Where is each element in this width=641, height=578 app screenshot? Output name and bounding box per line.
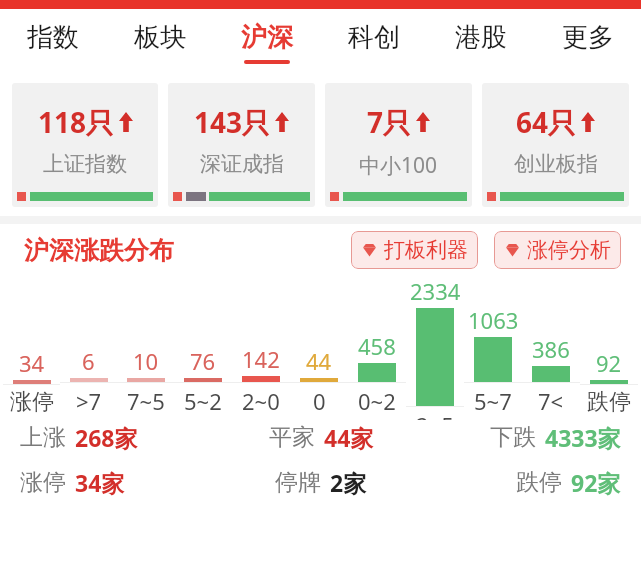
staticText: 5~7 bbox=[474, 386, 512, 416]
staticText: 港股 bbox=[455, 21, 507, 54]
button[interactable]: 沪深 bbox=[213, 9, 320, 75]
staticText: 沪深 bbox=[241, 21, 293, 54]
staticText: 涨停分析 bbox=[527, 237, 611, 263]
staticText: 92 bbox=[596, 348, 622, 378]
button[interactable]: 科创 bbox=[320, 9, 427, 75]
staticText: 64只 bbox=[516, 103, 577, 141]
other: VIP bbox=[361, 243, 378, 257]
staticText: 深证成指 bbox=[200, 151, 284, 177]
staticText: 268家 bbox=[75, 422, 138, 453]
staticText: 0~2 bbox=[358, 386, 396, 416]
button[interactable]: 92 bbox=[580, 276, 638, 420]
staticText: 2家 bbox=[330, 467, 367, 498]
staticText: 沪深涨跌分布 bbox=[24, 235, 174, 266]
staticText: 4333家 bbox=[545, 422, 621, 453]
button[interactable]: 458 bbox=[348, 276, 406, 420]
button[interactable]: 7只 bbox=[325, 83, 472, 207]
other: VIP bbox=[504, 243, 521, 257]
staticText: 44家 bbox=[324, 422, 374, 453]
staticText: 7只 bbox=[367, 103, 412, 141]
staticText: 44 bbox=[306, 346, 332, 376]
button[interactable]: 6 bbox=[60, 276, 117, 420]
button[interactable]: 上涨 bbox=[20, 422, 221, 453]
staticText: 458 bbox=[358, 331, 396, 361]
button[interactable]: 76 bbox=[174, 276, 232, 420]
staticText: 34 bbox=[19, 348, 45, 378]
button[interactable]: 64只 bbox=[482, 83, 629, 207]
staticText: 打板利器 bbox=[384, 237, 468, 263]
staticText: 6 bbox=[82, 346, 95, 376]
button[interactable]: 118只 bbox=[12, 83, 158, 207]
staticText: 科创 bbox=[348, 21, 400, 54]
staticText: 涨停 bbox=[20, 468, 66, 497]
button[interactable]: 停牌 bbox=[221, 467, 421, 498]
button[interactable]: 涨停 bbox=[20, 467, 221, 498]
button[interactable]: 44 bbox=[290, 276, 348, 420]
staticText: 下跌 bbox=[490, 423, 536, 452]
staticText: 跌停 bbox=[516, 468, 562, 497]
staticText: 143只 bbox=[194, 103, 271, 141]
staticText: >7 bbox=[76, 386, 102, 416]
button[interactable]: 34 bbox=[3, 276, 60, 420]
button[interactable]: 10 bbox=[117, 276, 174, 420]
staticText: 指数 bbox=[27, 21, 79, 54]
button[interactable]: 港股 bbox=[427, 9, 534, 75]
staticText: 10 bbox=[133, 346, 159, 376]
staticText: 0 bbox=[313, 386, 326, 416]
button[interactable]: 1063 bbox=[464, 276, 522, 420]
staticText: 76 bbox=[190, 346, 216, 376]
staticText: 上涨 bbox=[20, 423, 66, 452]
staticText: 中小100 bbox=[359, 151, 438, 180]
staticText: 386 bbox=[532, 334, 570, 364]
staticText: 2~5 bbox=[416, 410, 454, 420]
staticText: 涨停 bbox=[10, 388, 54, 416]
button[interactable]: 板块 bbox=[106, 9, 213, 75]
staticText: 2~0 bbox=[242, 386, 280, 416]
button[interactable]: 143只 bbox=[168, 83, 315, 207]
staticText: 1063 bbox=[468, 305, 519, 335]
button[interactable]: 指数 bbox=[0, 9, 106, 75]
staticText: 142 bbox=[242, 344, 280, 374]
staticText: 更多 bbox=[562, 21, 614, 54]
button[interactable]: 更多 bbox=[534, 9, 641, 75]
staticText: 118只 bbox=[38, 103, 115, 141]
button[interactable]: 2334 bbox=[406, 276, 464, 420]
staticText: 34家 bbox=[75, 467, 125, 498]
staticText: 7< bbox=[538, 386, 564, 416]
button[interactable]: 下跌 bbox=[421, 422, 621, 453]
staticText: 停牌 bbox=[275, 468, 321, 497]
button[interactable]: 386 bbox=[522, 276, 580, 420]
staticText: 平家 bbox=[269, 423, 315, 452]
button[interactable]: 平家 bbox=[221, 422, 421, 453]
staticText: 板块 bbox=[134, 21, 186, 54]
staticText: 跌停 bbox=[587, 388, 631, 416]
button[interactable]: VIP bbox=[351, 231, 478, 269]
button[interactable]: 跌停 bbox=[421, 467, 621, 498]
staticText: 上证指数 bbox=[43, 151, 127, 177]
staticText: 5~2 bbox=[184, 386, 222, 416]
button[interactable]: VIP bbox=[494, 231, 621, 269]
staticText: 7~5 bbox=[127, 386, 165, 416]
staticText: 创业板指 bbox=[514, 151, 598, 177]
staticText: 2334 bbox=[410, 276, 461, 306]
staticText: 92家 bbox=[571, 467, 621, 498]
button[interactable]: 142 bbox=[232, 276, 290, 420]
